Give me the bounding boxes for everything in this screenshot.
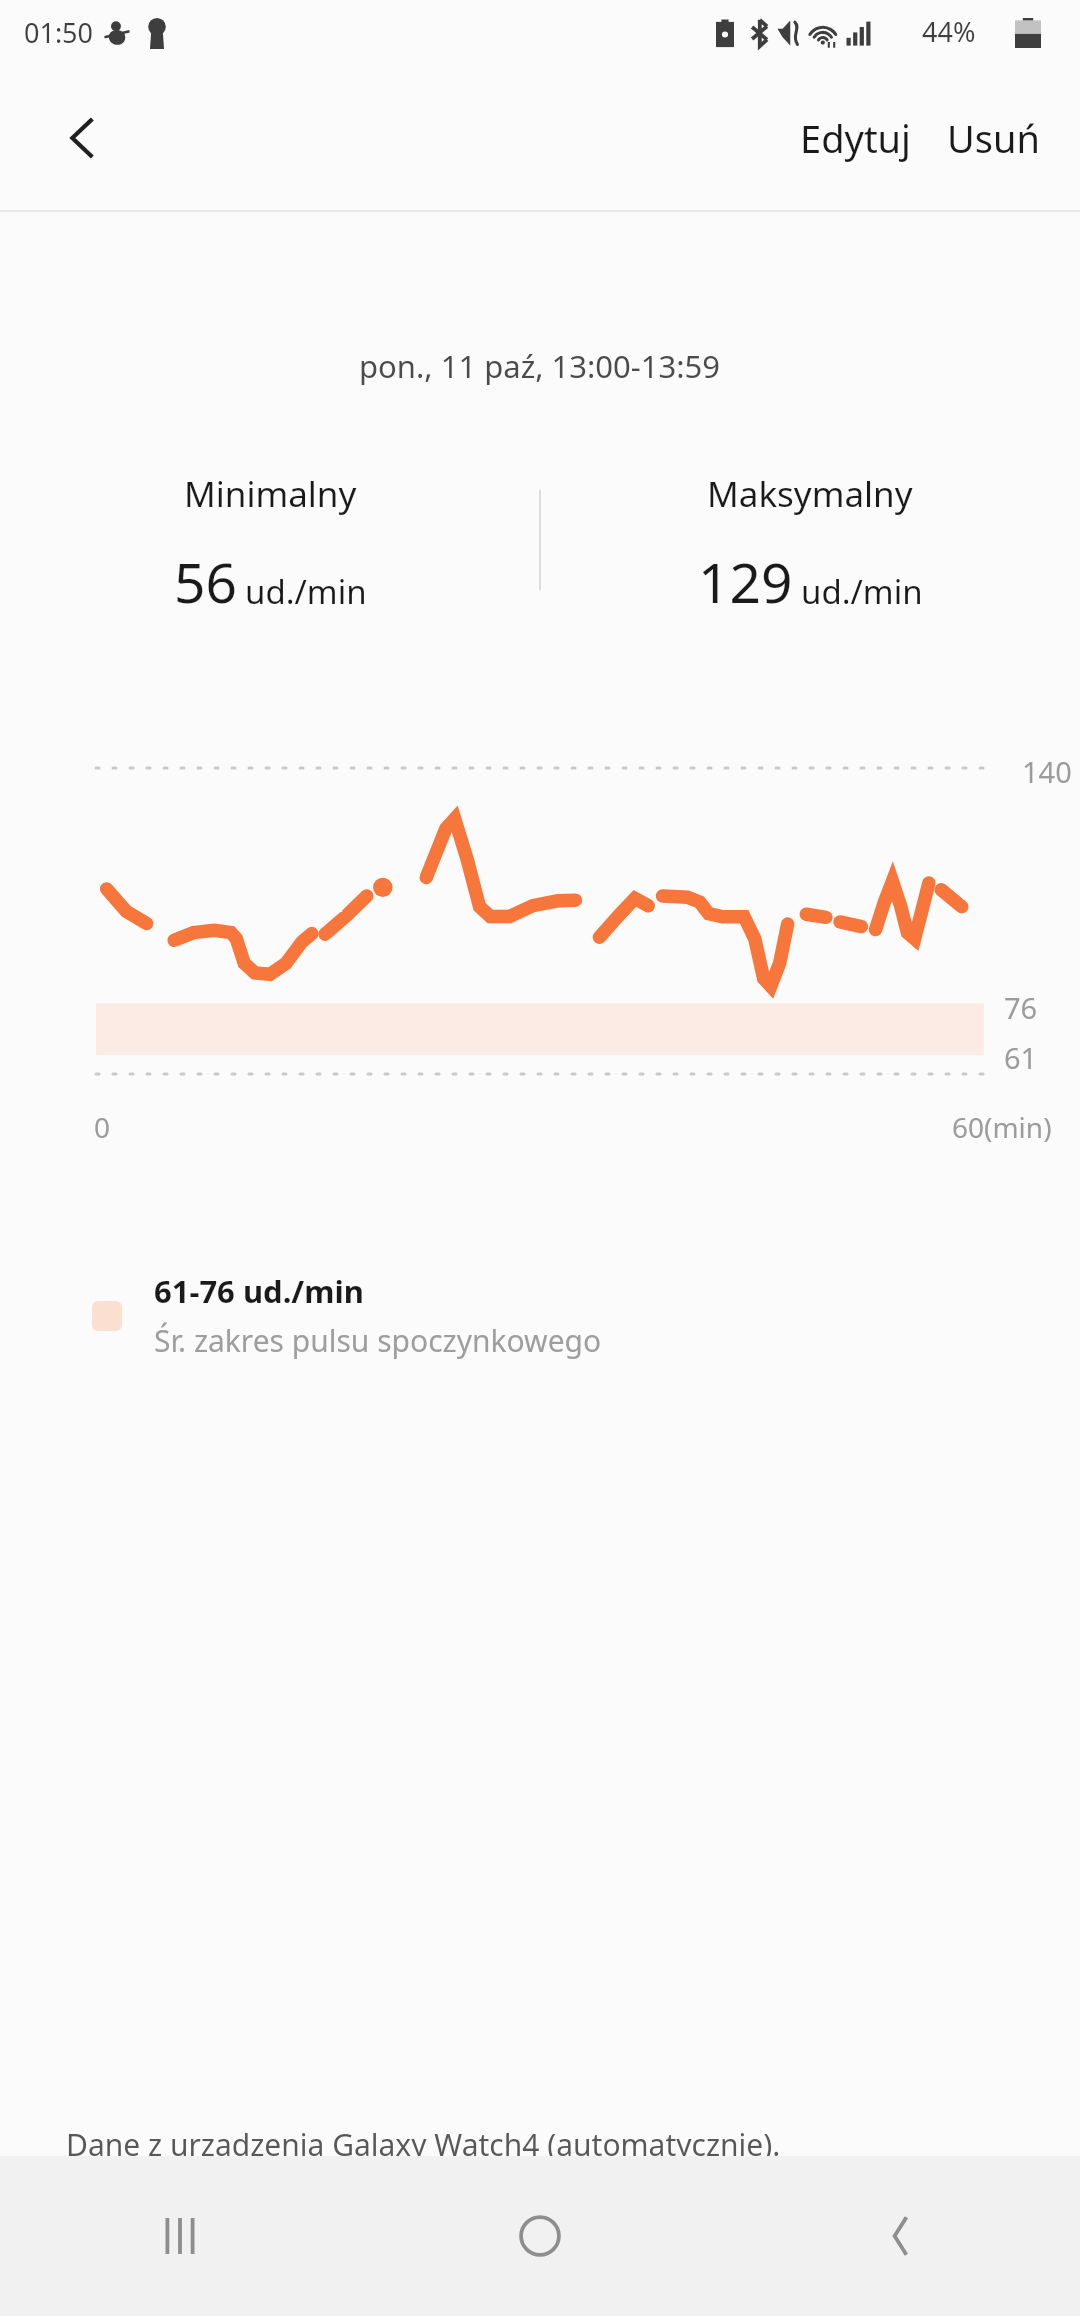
staticText: Minimalny [184, 470, 357, 518]
staticText: Śr. zakres pulsu spoczynkowego [154, 1320, 602, 1361]
button[interactable]: Back [720, 2156, 1080, 2316]
staticText: 44% [922, 13, 976, 50]
staticText: 01:50 [24, 14, 94, 51]
staticText: pon., 11 paź, 13:00-13:59 [359, 345, 721, 387]
staticText: 140 [1022, 752, 1072, 791]
staticText: 76 [1004, 988, 1038, 1027]
staticText: 61 [1004, 1038, 1038, 1077]
staticText: 61-76 ud./min [154, 1270, 364, 1312]
staticText: 60(min) [952, 1108, 1052, 1146]
staticText: 0 [94, 1108, 111, 1146]
staticText: 56 [174, 544, 237, 619]
staticText: 129 [698, 544, 793, 619]
staticText: Maksymalny [707, 470, 913, 518]
button[interactable]: Recent apps [0, 2156, 360, 2316]
button[interactable]: Back [28, 84, 136, 192]
button[interactable]: 61-76 ud./min [0, 1262, 1080, 1369]
staticText: Usuń [947, 112, 1040, 164]
staticText: ud./min [245, 569, 367, 614]
staticText: Edytuj [800, 112, 911, 164]
staticText: ud./min [801, 569, 923, 614]
button[interactable]: Edytuj [782, 90, 929, 186]
button[interactable]: Home [360, 2156, 720, 2316]
staticText: Dane z urządzenia Galaxy Watch4 (automat… [66, 2124, 781, 2165]
button[interactable]: Usuń [929, 90, 1080, 186]
